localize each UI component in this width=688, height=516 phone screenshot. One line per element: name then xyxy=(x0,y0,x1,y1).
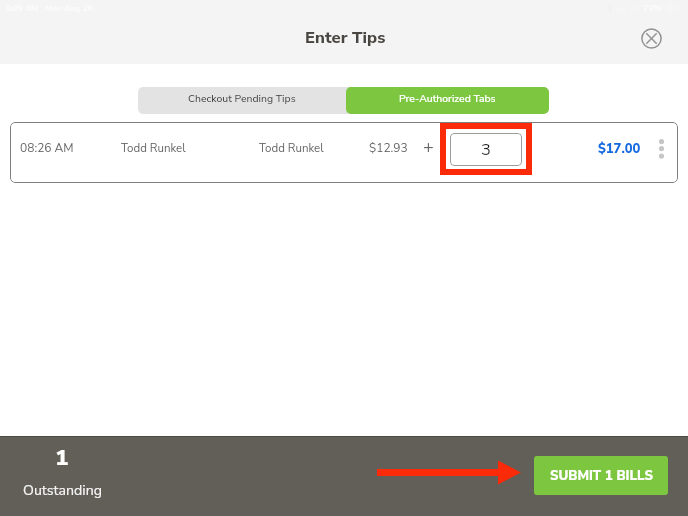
button[interactable]: Close xyxy=(635,22,668,55)
staticText: Enter Tips xyxy=(305,26,386,49)
staticText: Outstanding xyxy=(23,481,103,500)
staticText: Todd Runkel xyxy=(121,140,186,156)
button[interactable]: Checkout Pending Tips xyxy=(138,87,346,114)
staticText: Checkout Pending Tips xyxy=(188,91,296,105)
button[interactable]: More options xyxy=(647,127,674,177)
staticText: $17.00 xyxy=(598,140,641,158)
staticText: + xyxy=(423,135,434,160)
staticText: 3 xyxy=(481,138,491,161)
staticText: 08:26 AM xyxy=(20,140,74,156)
staticText: $12.93 xyxy=(369,140,408,156)
button[interactable]: Pre-Authorized Tabs xyxy=(346,87,549,114)
staticText: Pre-Authorized Tabs xyxy=(399,91,496,105)
button[interactable]: 08:26 AM xyxy=(10,122,678,183)
button[interactable]: 3 xyxy=(450,133,522,166)
staticText: SUBMIT 1 BILLS xyxy=(550,467,653,485)
staticText: Todd Runkel xyxy=(259,140,324,156)
staticText: 1 xyxy=(55,442,69,473)
button[interactable]: SUBMIT 1 BILLS xyxy=(534,456,668,495)
